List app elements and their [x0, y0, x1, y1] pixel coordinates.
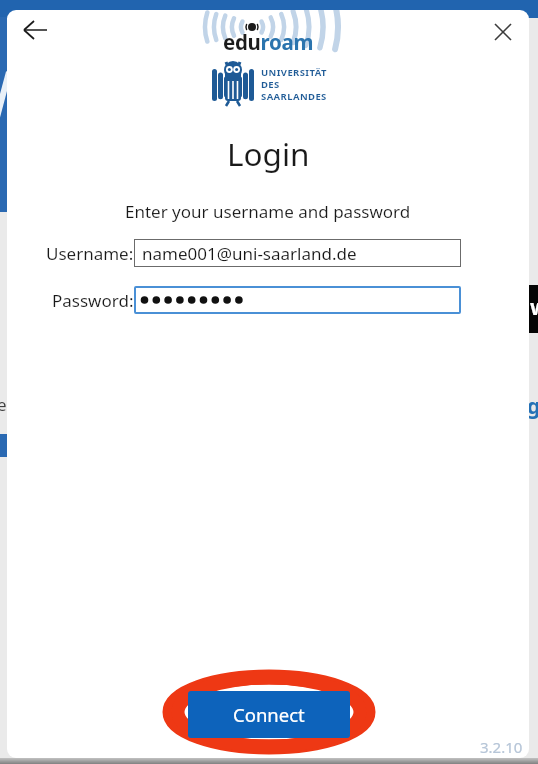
staticText: eduroam [223, 28, 314, 56]
button[interactable] [21, 18, 57, 44]
staticText: Password: [52, 289, 134, 312]
button[interactable]: name001@uni-saarland.de [134, 239, 461, 267]
staticText: Username: [46, 242, 134, 265]
button[interactable]: Connect [188, 691, 350, 738]
staticText: 3.2.10 [480, 737, 523, 757]
staticText: w [530, 293, 538, 322]
button[interactable] [134, 286, 461, 314]
staticText: e [0, 393, 7, 416]
staticText: UNIVERSITÄT DES SAARLANDES [261, 66, 327, 103]
button[interactable] [488, 17, 518, 47]
staticText: name001@uni-saarland.de [142, 242, 357, 265]
staticText: Connect [233, 702, 305, 727]
staticText: Login [227, 132, 310, 175]
staticText: Enter your username and password [125, 200, 411, 223]
staticText: g [527, 392, 538, 421]
